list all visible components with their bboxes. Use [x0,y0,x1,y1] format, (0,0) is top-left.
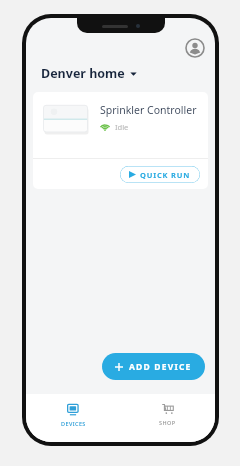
button[interactable]: DEVICES [26,394,120,442]
staticText: Sprinkler Controller [100,103,197,117]
button[interactable]: ADD DEVICE [102,353,205,380]
staticText: Denver home [41,65,125,82]
button[interactable]: Sprinkler Controller [33,92,208,189]
button[interactable]: Account [184,37,206,59]
button[interactable]: SHOP [120,394,215,442]
staticText: SHOP [159,419,176,426]
button[interactable]: QUICK RUN [120,166,200,183]
button[interactable]: Denver home [39,63,139,84]
staticText: QUICK RUN [140,170,191,180]
staticText: DEVICES [61,420,86,427]
staticText: ADD DEVICE [129,361,192,373]
staticText: Idle [115,122,129,132]
